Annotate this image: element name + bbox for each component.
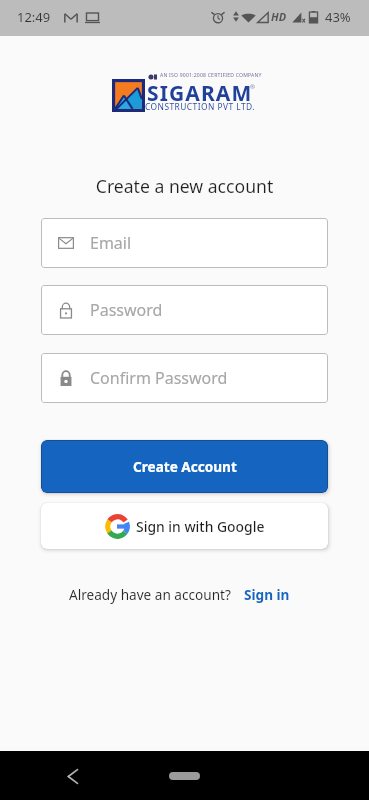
staticText: Create a new account <box>0 174 369 198</box>
button[interactable]: Confirm Password <box>41 353 328 403</box>
button[interactable]: Password <box>41 285 328 335</box>
staticText: 12:49 <box>17 8 51 26</box>
staticText: Email <box>90 232 132 254</box>
button[interactable]: Sign in with Google <box>41 503 328 549</box>
button[interactable]: Email <box>41 218 328 268</box>
staticText: HD <box>271 9 287 24</box>
button[interactable]: Sign in <box>244 585 290 604</box>
staticText: 43% <box>325 8 351 26</box>
staticText: ® <box>250 83 255 91</box>
staticText: Confirm Password <box>90 367 228 389</box>
staticText: SIGARAM <box>147 79 253 108</box>
button[interactable]: Home <box>169 772 200 780</box>
button[interactable]: Back <box>60 764 84 788</box>
staticText: Already have an account? <box>69 585 231 604</box>
staticText: AN ISO 9001:2008 CERTIFIED COMPANY <box>160 72 262 79</box>
staticText: Sign in <box>244 585 290 604</box>
staticText: Create Account <box>133 457 237 476</box>
button[interactable]: Create Account <box>41 440 328 493</box>
staticText: Password <box>90 299 163 321</box>
staticText: CONSTRUCTION PVT LTD. <box>145 101 255 112</box>
staticText: Sign in with Google <box>136 517 265 536</box>
